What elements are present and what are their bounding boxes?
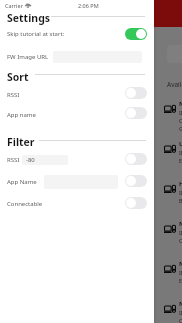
button[interactable]: App name xyxy=(7,108,148,122)
staticText: NRF Beacon xyxy=(179,260,182,268)
button[interactable]: App Name xyxy=(7,175,154,189)
button[interactable]: Filter by RSSI toggle, off xyxy=(125,153,147,165)
button[interactable]: Unknown xyxy=(164,139,182,179)
staticText: Sort xyxy=(7,70,29,84)
staticText: NRF Thingy xyxy=(179,300,182,308)
staticText: Available devices xyxy=(167,80,182,89)
button[interactable]: Skip tutorial at start toggle, on xyxy=(125,28,147,40)
staticText: RSSI xyxy=(7,91,20,99)
button[interactable]: Connectable xyxy=(7,197,148,211)
staticText: Connectable xyxy=(179,117,182,124)
staticText: ID: DD:EE:FF:00 xyxy=(179,309,182,316)
button[interactable]: RSSI xyxy=(7,153,154,167)
staticText: ID: C3:AB:12:09 xyxy=(179,109,182,116)
button[interactable]: HRM Sensor xyxy=(164,179,182,219)
staticText: Skip tutorial at start: xyxy=(7,30,65,38)
staticText: App Name xyxy=(7,178,37,186)
staticText: App name xyxy=(7,111,36,119)
button[interactable]: FW Image URL xyxy=(0,50,154,64)
staticText: Settings xyxy=(7,11,51,25)
staticText: Generic xyxy=(179,125,182,132)
staticText: Nordic_Blinky xyxy=(179,220,182,228)
staticText: Connectable xyxy=(179,317,182,323)
staticText: Unknown xyxy=(179,140,182,148)
staticText: 2:06 PM xyxy=(78,2,99,9)
button[interactable]: NRF-Device xyxy=(164,99,182,139)
staticText: -80 xyxy=(26,156,35,164)
staticText: Eddystone xyxy=(179,157,182,164)
button[interactable]: NRF Beacon xyxy=(164,259,182,299)
staticText: ID: 11:22:33:44 xyxy=(179,189,182,196)
staticText: ID: 99:AA:BB:CC xyxy=(179,269,182,276)
staticText: Connectable xyxy=(179,237,182,244)
button[interactable]: Sort by app name toggle, off xyxy=(125,107,147,119)
staticText: Beacon xyxy=(179,197,182,204)
staticText: ID: D7:10:4F:88 xyxy=(179,149,182,156)
button[interactable]: NRF Thingy xyxy=(164,299,182,323)
staticText: FW Image URL xyxy=(7,53,49,61)
staticText: Eddystone xyxy=(179,277,182,284)
button[interactable]: Sort by RSSI toggle, off xyxy=(125,87,147,99)
staticText: Connectable xyxy=(7,200,43,208)
staticText: ID: 55:66:77:88 xyxy=(179,229,182,236)
button[interactable]: Filter connectable toggle, off xyxy=(125,197,147,209)
staticText: NRF-Device xyxy=(179,100,182,108)
button[interactable]: Skip tutorial at start: xyxy=(7,27,148,41)
button[interactable]: RSSI xyxy=(7,88,148,102)
staticText: Carrier xyxy=(5,2,23,9)
button[interactable]: Nordic_Blinky xyxy=(164,219,182,259)
button[interactable]: Filter by app name toggle, off xyxy=(125,175,147,187)
staticText: Filter xyxy=(7,135,35,149)
staticText: HRM Sensor xyxy=(179,180,182,188)
button[interactable]: -80 xyxy=(22,155,68,165)
staticText: RSSI xyxy=(7,156,20,164)
